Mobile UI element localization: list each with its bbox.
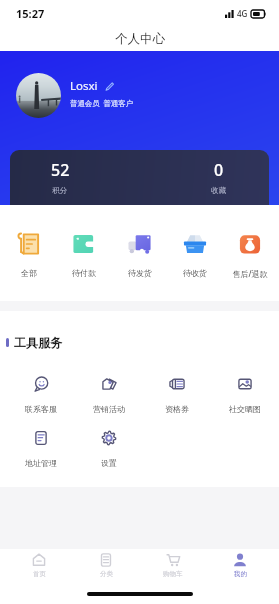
button[interactable]: 联系客服 <box>6 376 75 414</box>
button[interactable]: Avatar <box>16 73 61 118</box>
button[interactable]: 待收货 <box>169 232 221 278</box>
button[interactable]: 待付款 <box>58 232 110 278</box>
staticText: 我的 <box>234 570 247 578</box>
staticText: 首页 <box>33 570 46 578</box>
staticText: Losxi <box>70 78 98 94</box>
staticText: 购物车 <box>163 570 183 578</box>
staticText: 资格券 <box>165 404 189 414</box>
staticText: 收藏 <box>211 186 227 196</box>
button[interactable]: 我的 <box>212 553 268 578</box>
staticText: 营销活动 <box>93 404 125 414</box>
staticText: 15:27 <box>16 6 45 21</box>
button[interactable]: 设置 <box>75 430 143 468</box>
staticText: 设置 <box>101 458 117 468</box>
button[interactable]: 地址管理 <box>6 430 75 468</box>
staticText: 0 <box>214 159 224 181</box>
staticText: 售后/退款 <box>232 268 268 279</box>
staticText: 分类 <box>100 570 113 578</box>
button[interactable]: 营销活动 <box>75 376 143 414</box>
button[interactable]: 售后/退款 <box>224 232 276 279</box>
button[interactable]: 分类 <box>78 553 134 578</box>
staticText: 社交晒图 <box>229 404 261 414</box>
button[interactable]: 52 <box>40 150 80 205</box>
button[interactable]: 首页 <box>11 553 67 578</box>
staticText: 积分 <box>52 186 68 196</box>
staticText: 个人中心 <box>115 31 165 47</box>
staticText: 待付款 <box>72 268 96 278</box>
button[interactable]: Edit profile <box>105 82 114 91</box>
button[interactable]: 待发货 <box>114 232 166 278</box>
staticText: 工具服务 <box>14 335 62 350</box>
button[interactable]: 全部 <box>3 232 55 278</box>
staticText: 4G <box>237 8 248 19</box>
staticText: 待发货 <box>128 268 152 278</box>
staticText: 普通会员 普通客户 <box>70 98 133 108</box>
button[interactable]: 社交晒图 <box>211 376 279 414</box>
staticText: 地址管理 <box>25 458 57 468</box>
staticText: 全部 <box>21 268 37 278</box>
staticText: 联系客服 <box>25 404 57 414</box>
staticText: 52 <box>51 159 70 181</box>
button[interactable]: 购物车 <box>145 553 201 578</box>
button[interactable]: 0 <box>199 150 239 205</box>
staticText: 待收货 <box>183 268 207 278</box>
button[interactable]: 资格券 <box>143 376 211 414</box>
